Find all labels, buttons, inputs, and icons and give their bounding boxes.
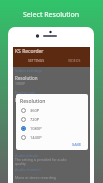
staticText: 720P — [30, 117, 40, 122]
button[interactable]: SAVE — [70, 141, 84, 148]
staticText: Mono or stereo recording — [15, 175, 56, 180]
staticText: SETTINGS — [28, 58, 45, 63]
staticText: Resolution — [20, 98, 46, 105]
staticText: KS Recorder — [15, 48, 44, 55]
button[interactable]: 720P — [16, 115, 88, 124]
staticText: 360P — [30, 108, 40, 113]
staticText: VIDEOS — [68, 58, 81, 63]
button[interactable]: 1440P — [16, 133, 88, 142]
staticText: SAVE — [72, 142, 82, 147]
staticText: Audio bitrate — [15, 153, 39, 158]
staticText: 1080P — [30, 126, 42, 131]
staticText: Resolution — [15, 75, 38, 81]
staticText: quality — [15, 161, 26, 166]
staticText: Video settings — [15, 68, 42, 73]
button[interactable]: 1080P — [16, 124, 88, 133]
staticText: Audio channel — [15, 167, 41, 172]
staticText: 1080P — [15, 81, 26, 86]
staticText: Frame rate — [15, 90, 36, 95]
staticText: 1440P — [30, 135, 42, 140]
staticText: Bit rate — [15, 97, 31, 103]
staticText: The setting is provided for audio — [15, 157, 67, 162]
staticText: Select Resolution — [23, 10, 80, 20]
button[interactable]: 360P — [16, 106, 88, 115]
